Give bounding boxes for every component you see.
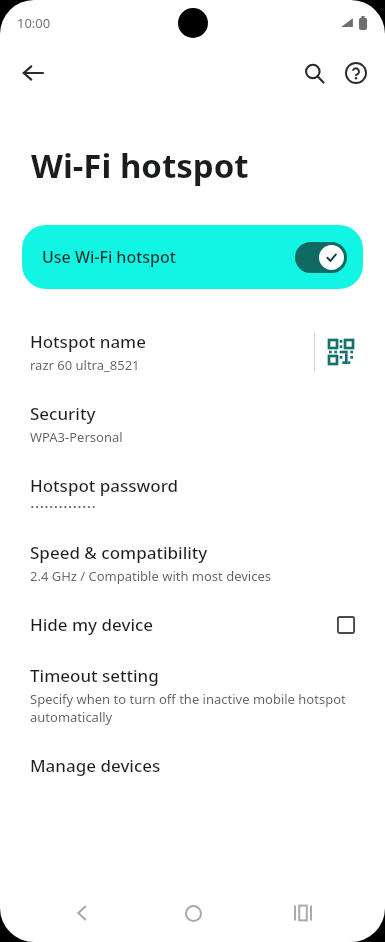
button[interactable]: Recent apps	[275, 885, 331, 941]
button[interactable]: Speed & compatibility	[0, 527, 385, 599]
staticText: 2.4 GHz / Compatible with most devices	[30, 567, 271, 585]
button[interactable]: Search	[293, 52, 335, 94]
staticText: 10:00	[17, 14, 51, 32]
button[interactable]: Security	[0, 388, 385, 460]
staticText: Hotspot name	[30, 330, 146, 353]
staticText: Speed & compatibility	[30, 541, 208, 564]
staticText: Timeout setting	[30, 664, 159, 687]
staticText: WPA3-Personal	[30, 428, 123, 446]
button[interactable]: Use Wi-Fi hotspot	[22, 225, 363, 289]
button[interactable]: Home	[165, 885, 221, 941]
button[interactable]: Help	[335, 52, 377, 94]
button[interactable]: Back	[12, 52, 54, 94]
staticText: Hotspot password	[30, 474, 179, 497]
staticText: Wi-Fi hotspot	[31, 143, 249, 188]
staticText: Hide my device	[30, 613, 154, 636]
staticText: Use Wi-Fi hotspot	[42, 246, 176, 268]
button[interactable]: Timeout setting	[0, 650, 385, 740]
button[interactable]: Hide my device	[0, 599, 385, 650]
staticText: Specify when to turn off the inactive mo…	[30, 690, 361, 726]
button[interactable]: Share hotspot QR code	[315, 330, 367, 374]
staticText: razr 60 ultra_8521	[30, 356, 140, 374]
button[interactable]: Back	[54, 885, 110, 941]
button[interactable]: Manage devices	[0, 740, 385, 791]
staticText: Security	[30, 402, 96, 425]
staticText: Manage devices	[30, 754, 161, 777]
button[interactable]: Hotspot password	[0, 460, 385, 527]
button[interactable]: Hotspot name	[0, 316, 385, 388]
